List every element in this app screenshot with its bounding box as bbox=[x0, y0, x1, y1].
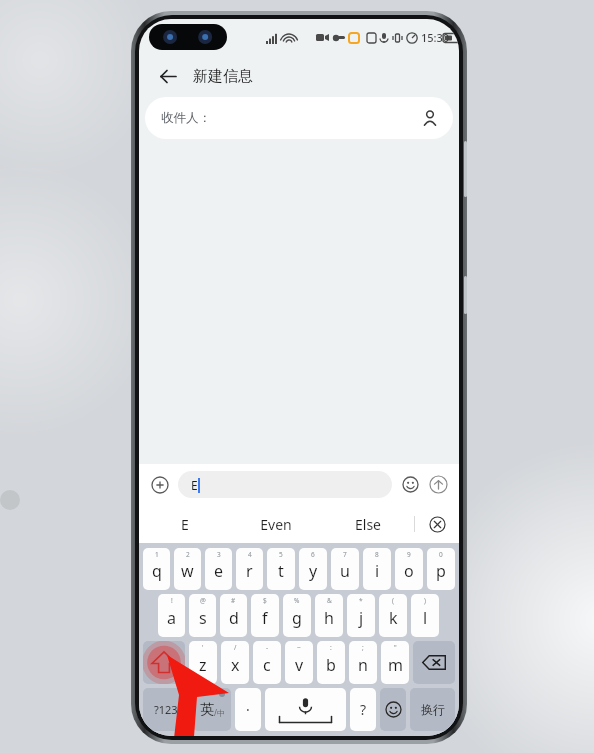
button[interactable]: ' bbox=[189, 641, 217, 684]
button[interactable]: : bbox=[317, 641, 345, 684]
button[interactable]: % bbox=[283, 594, 311, 637]
staticText: f bbox=[262, 607, 268, 629]
staticText: - bbox=[266, 643, 269, 652]
button[interactable]: Add attachment bbox=[147, 472, 173, 498]
button[interactable]: 0 bbox=[427, 548, 455, 590]
staticText: s bbox=[199, 607, 207, 629]
staticText: t bbox=[278, 560, 284, 582]
staticText: @ bbox=[200, 596, 206, 605]
staticText: a bbox=[167, 607, 176, 629]
button[interactable]: ? bbox=[350, 688, 376, 731]
staticText: " bbox=[394, 643, 397, 652]
button[interactable]: E bbox=[139, 505, 230, 543]
staticText: · bbox=[246, 700, 250, 719]
staticText: $ bbox=[263, 596, 267, 605]
staticText: # bbox=[231, 596, 236, 605]
button[interactable]: Else bbox=[322, 505, 414, 543]
button[interactable]: 6 bbox=[299, 548, 327, 590]
button[interactable]: Even bbox=[230, 505, 322, 543]
staticText: c bbox=[263, 654, 271, 676]
staticText: 换行 bbox=[421, 702, 445, 717]
button[interactable]: · bbox=[235, 688, 261, 731]
staticText: p bbox=[436, 560, 446, 582]
button[interactable]: Switch language bbox=[193, 688, 231, 731]
button[interactable]: * bbox=[347, 594, 375, 637]
button[interactable]: ! bbox=[158, 594, 185, 637]
button[interactable]: Shift bbox=[143, 641, 185, 684]
staticText: E bbox=[181, 515, 189, 534]
button[interactable]: 7 bbox=[331, 548, 359, 590]
button[interactable]: ~ bbox=[285, 641, 313, 684]
staticText: 7 bbox=[343, 550, 347, 559]
staticText: 2 bbox=[186, 550, 190, 559]
staticText: ' bbox=[202, 643, 204, 652]
staticText: 英 bbox=[200, 701, 214, 719]
button[interactable]: 收件人： bbox=[145, 97, 453, 139]
staticText: ; bbox=[362, 643, 364, 652]
button[interactable]: 4 bbox=[236, 548, 263, 590]
button[interactable]: 换行 bbox=[410, 688, 455, 731]
staticText: / bbox=[234, 643, 237, 652]
button[interactable]: @ bbox=[189, 594, 216, 637]
staticText: d bbox=[229, 607, 239, 629]
staticText: 5 bbox=[279, 550, 283, 559]
button[interactable]: Pick contact bbox=[417, 105, 443, 131]
button[interactable]: 9 bbox=[395, 548, 423, 590]
staticText: 8 bbox=[375, 550, 379, 559]
staticText: m bbox=[388, 654, 403, 676]
staticText: & bbox=[327, 596, 332, 605]
staticText: w bbox=[181, 560, 194, 582]
staticText: 4 bbox=[248, 550, 252, 559]
button[interactable]: Emoji bbox=[380, 688, 406, 731]
staticText: g bbox=[292, 607, 302, 629]
staticText: E bbox=[191, 477, 198, 493]
staticText: % bbox=[294, 596, 300, 605]
button[interactable]: / bbox=[221, 641, 249, 684]
button[interactable]: Close suggestions bbox=[415, 505, 459, 543]
button[interactable]: 5 bbox=[267, 548, 295, 590]
staticText: b bbox=[326, 654, 336, 676]
staticText: 1 bbox=[155, 550, 159, 559]
staticText: 新建信息 bbox=[193, 67, 253, 86]
staticText: j bbox=[359, 607, 364, 629]
button[interactable]: Send bbox=[426, 472, 451, 497]
staticText: y bbox=[309, 560, 318, 582]
button[interactable]: Back bbox=[153, 61, 183, 91]
button[interactable]: ?123 bbox=[143, 688, 189, 731]
button[interactable]: Space / voice input bbox=[265, 688, 346, 731]
button[interactable]: Backspace bbox=[413, 641, 455, 684]
staticText: v bbox=[295, 654, 304, 676]
staticText: q bbox=[152, 560, 162, 582]
button[interactable]: ( bbox=[379, 594, 407, 637]
staticText: z bbox=[199, 654, 207, 676]
button[interactable]: " bbox=[381, 641, 409, 684]
staticText: ? bbox=[360, 700, 367, 719]
staticText: e bbox=[214, 560, 224, 582]
staticText: 收件人： bbox=[161, 110, 211, 126]
button[interactable]: 1 bbox=[143, 548, 170, 590]
staticText: r bbox=[246, 560, 253, 582]
staticText: k bbox=[389, 607, 398, 629]
staticText: ) bbox=[424, 596, 426, 605]
button[interactable]: 8 bbox=[363, 548, 391, 590]
staticText: l bbox=[423, 607, 428, 629]
staticText: : bbox=[330, 643, 332, 652]
button[interactable]: $ bbox=[251, 594, 279, 637]
button[interactable]: & bbox=[315, 594, 343, 637]
button[interactable]: 2 bbox=[174, 548, 201, 590]
button[interactable]: E bbox=[178, 471, 392, 498]
staticText: i bbox=[375, 560, 380, 582]
staticText: u bbox=[340, 560, 350, 582]
staticText: 15:30 bbox=[421, 30, 450, 45]
button[interactable]: - bbox=[253, 641, 281, 684]
button[interactable]: # bbox=[220, 594, 247, 637]
staticText: /中 bbox=[214, 707, 225, 718]
staticText: o bbox=[404, 560, 414, 582]
button[interactable]: ) bbox=[411, 594, 439, 637]
button[interactable]: Emoji bbox=[398, 472, 423, 497]
staticText: 9 bbox=[407, 550, 411, 559]
staticText: ! bbox=[171, 596, 173, 605]
button[interactable]: 3 bbox=[205, 548, 232, 590]
button[interactable]: ; bbox=[349, 641, 377, 684]
staticText: ?123 bbox=[154, 702, 178, 717]
